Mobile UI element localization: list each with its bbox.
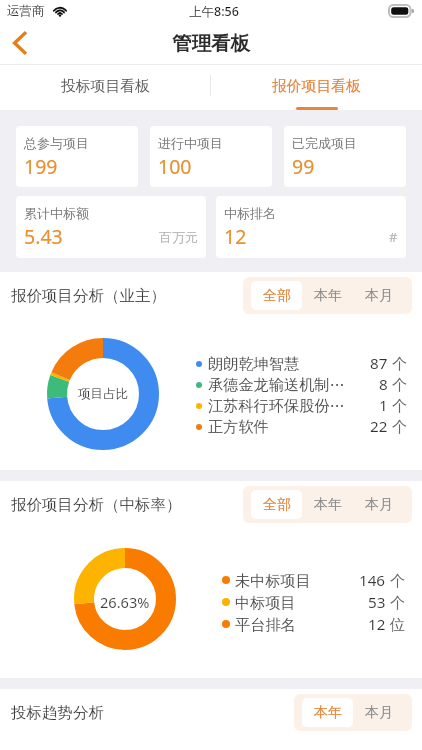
staticText: # bbox=[389, 228, 398, 246]
staticText: 个 bbox=[390, 593, 406, 612]
staticText: 承德金龙输送机制造有限公司 bbox=[208, 375, 348, 394]
staticText: 个 bbox=[392, 375, 408, 394]
staticText: 199 bbox=[24, 153, 58, 180]
staticText: 87 bbox=[370, 353, 388, 374]
button[interactable]: 投标项目看板 bbox=[0, 65, 211, 110]
staticText: 报价项目分析（业主） bbox=[11, 286, 166, 306]
staticText: 上午8:56 bbox=[189, 3, 239, 20]
button[interactable]: 已完成项目 bbox=[284, 126, 406, 187]
staticText: 53 bbox=[368, 592, 386, 613]
button[interactable]: 全部 bbox=[251, 281, 302, 310]
staticText: 朗朗乾坤智慧 bbox=[208, 354, 300, 373]
staticText: 投标项目看板 bbox=[61, 77, 150, 96]
staticText: 本月 bbox=[365, 287, 393, 305]
staticText: 8 bbox=[379, 374, 388, 395]
staticText: 个 bbox=[390, 571, 406, 590]
staticText: 运营商 bbox=[7, 3, 45, 19]
staticText: 百万元 bbox=[159, 229, 198, 245]
staticText: 12 bbox=[224, 223, 247, 250]
staticText: 个 bbox=[392, 417, 408, 436]
staticText: 146 bbox=[359, 570, 386, 591]
staticText: 全部 bbox=[263, 287, 291, 305]
button[interactable]: 返回 bbox=[0, 22, 40, 64]
staticText: 本年 bbox=[314, 287, 342, 305]
staticText: 位 bbox=[390, 615, 406, 634]
button[interactable]: 总参与项目 bbox=[16, 126, 138, 187]
button[interactable]: 本月 bbox=[353, 281, 404, 310]
staticText: 中标排名 bbox=[224, 205, 276, 221]
staticText: 本年 bbox=[314, 704, 342, 722]
staticText: 12 bbox=[368, 614, 386, 635]
staticText: 江苏科行环保股份有限公司 bbox=[208, 396, 348, 415]
staticText: 项目占比 bbox=[78, 386, 129, 402]
staticText: 已完成项目 bbox=[292, 135, 357, 151]
staticText: 管理看板 bbox=[172, 31, 250, 56]
staticText: 本月 bbox=[365, 704, 393, 722]
staticText: 个 bbox=[392, 354, 408, 373]
staticText: 99 bbox=[292, 153, 315, 180]
staticText: 正方软件 bbox=[208, 417, 269, 436]
button[interactable]: 本月 bbox=[353, 698, 404, 727]
staticText: 22 bbox=[370, 416, 388, 437]
staticText: 1 bbox=[379, 395, 388, 416]
button[interactable]: 报价项目看板 bbox=[211, 65, 422, 110]
button[interactable]: 本月 bbox=[353, 490, 404, 519]
staticText: 全部 bbox=[263, 496, 291, 514]
staticText: 中标项目 bbox=[235, 593, 296, 612]
staticText: 报价项目分析（中标率） bbox=[11, 495, 182, 515]
button[interactable]: 全部 bbox=[251, 490, 302, 519]
staticText: 26.63% bbox=[100, 592, 150, 612]
button[interactable]: 进行中项目 bbox=[150, 126, 272, 187]
staticText: 投标趋势分析 bbox=[11, 703, 104, 723]
staticText: 100 bbox=[158, 153, 192, 180]
button[interactable]: 中标排名 bbox=[216, 196, 406, 258]
button[interactable]: 累计中标额 bbox=[16, 196, 206, 258]
button[interactable]: 本年 bbox=[302, 698, 353, 727]
button[interactable]: 本年 bbox=[302, 281, 353, 310]
staticText: 本年 bbox=[314, 496, 342, 514]
staticText: 个 bbox=[392, 396, 408, 415]
staticText: 累计中标额 bbox=[24, 205, 89, 221]
staticText: 未中标项目 bbox=[235, 571, 311, 590]
staticText: 进行中项目 bbox=[158, 135, 223, 151]
staticText: 报价项目看板 bbox=[272, 77, 361, 96]
staticText: 平台排名 bbox=[235, 615, 296, 634]
button[interactable]: 本年 bbox=[302, 490, 353, 519]
staticText: 总参与项目 bbox=[24, 135, 89, 151]
staticText: 5.43 bbox=[24, 223, 63, 250]
staticText: 本月 bbox=[365, 496, 393, 514]
